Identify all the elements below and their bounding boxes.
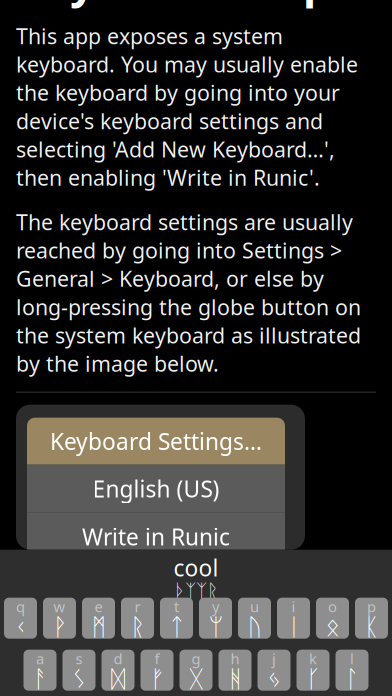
staticText: Keyboard help	[16, 0, 331, 10]
button[interactable]: t	[160, 598, 193, 639]
button[interactable]: s	[62, 650, 95, 691]
staticText: ᚲ	[13, 616, 27, 640]
button[interactable]: g	[179, 650, 212, 691]
button[interactable]: f	[140, 650, 173, 691]
button[interactable]: i	[277, 598, 310, 639]
staticText: a	[36, 649, 44, 668]
staticText: r	[134, 597, 140, 616]
staticText: cool	[173, 552, 218, 583]
staticText: ᚹ	[52, 616, 66, 640]
staticText: ᛚ	[345, 668, 359, 692]
staticText: ᚱ	[130, 616, 144, 640]
button[interactable]: w	[43, 598, 76, 639]
staticText: ᛟ	[325, 616, 339, 640]
staticText: English (US)	[92, 474, 219, 504]
button[interactable]: p	[355, 598, 388, 639]
staticText: ᛏ	[169, 616, 183, 640]
button[interactable]: h	[218, 650, 251, 691]
staticText: d	[113, 649, 122, 668]
button[interactable]: q	[4, 598, 37, 639]
staticText: ᛁ	[286, 616, 300, 640]
button[interactable]: e	[82, 598, 115, 639]
staticText: o	[328, 597, 337, 616]
staticText: w	[53, 597, 65, 616]
button[interactable]: u	[238, 598, 271, 639]
staticText: ᚻ	[228, 668, 242, 692]
staticText: ᚨ	[33, 668, 47, 692]
staticText: ᚦᛉᛉᚱ	[174, 583, 218, 601]
staticText: ᛕ	[364, 616, 378, 640]
staticText: g	[191, 649, 200, 668]
staticText: k	[309, 649, 317, 668]
staticText: t	[174, 597, 179, 616]
staticText: h	[230, 649, 239, 668]
staticText: l	[350, 649, 354, 668]
staticText: j	[272, 649, 276, 668]
staticText: p	[367, 597, 376, 616]
staticText: y	[212, 597, 219, 616]
button[interactable]: r	[121, 598, 154, 639]
staticText: ᛘ	[208, 616, 222, 640]
staticText: ᛊ	[72, 668, 86, 692]
staticText: ᚷ	[189, 668, 203, 692]
staticText: u	[250, 597, 259, 616]
staticText: i	[291, 597, 295, 616]
staticText: The keyboard settings are usually reache…	[16, 208, 361, 378]
staticText: ᛞ	[111, 668, 125, 692]
staticText: This app exposes a system keyboard. You …	[16, 22, 358, 192]
button[interactable]: j	[257, 650, 290, 691]
staticText: f	[154, 649, 159, 668]
button[interactable]: a	[23, 650, 56, 691]
staticText: e	[94, 597, 102, 616]
staticText: ᚠ	[150, 668, 164, 692]
button[interactable]: y	[199, 598, 232, 639]
button[interactable]: d	[101, 650, 134, 691]
staticText: q	[16, 597, 25, 616]
button[interactable]: k	[296, 650, 329, 691]
button[interactable]: l	[335, 650, 368, 691]
staticText: ᚢ	[247, 616, 261, 640]
button[interactable]: o	[316, 598, 349, 639]
staticText: Write in Runic	[82, 522, 230, 552]
staticText: ᛗ	[91, 616, 105, 640]
staticText: ᛃ	[267, 668, 281, 692]
staticText: ᚴ	[306, 668, 320, 692]
staticText: s	[75, 649, 82, 668]
staticText: Keyboard Settings…	[50, 426, 262, 456]
